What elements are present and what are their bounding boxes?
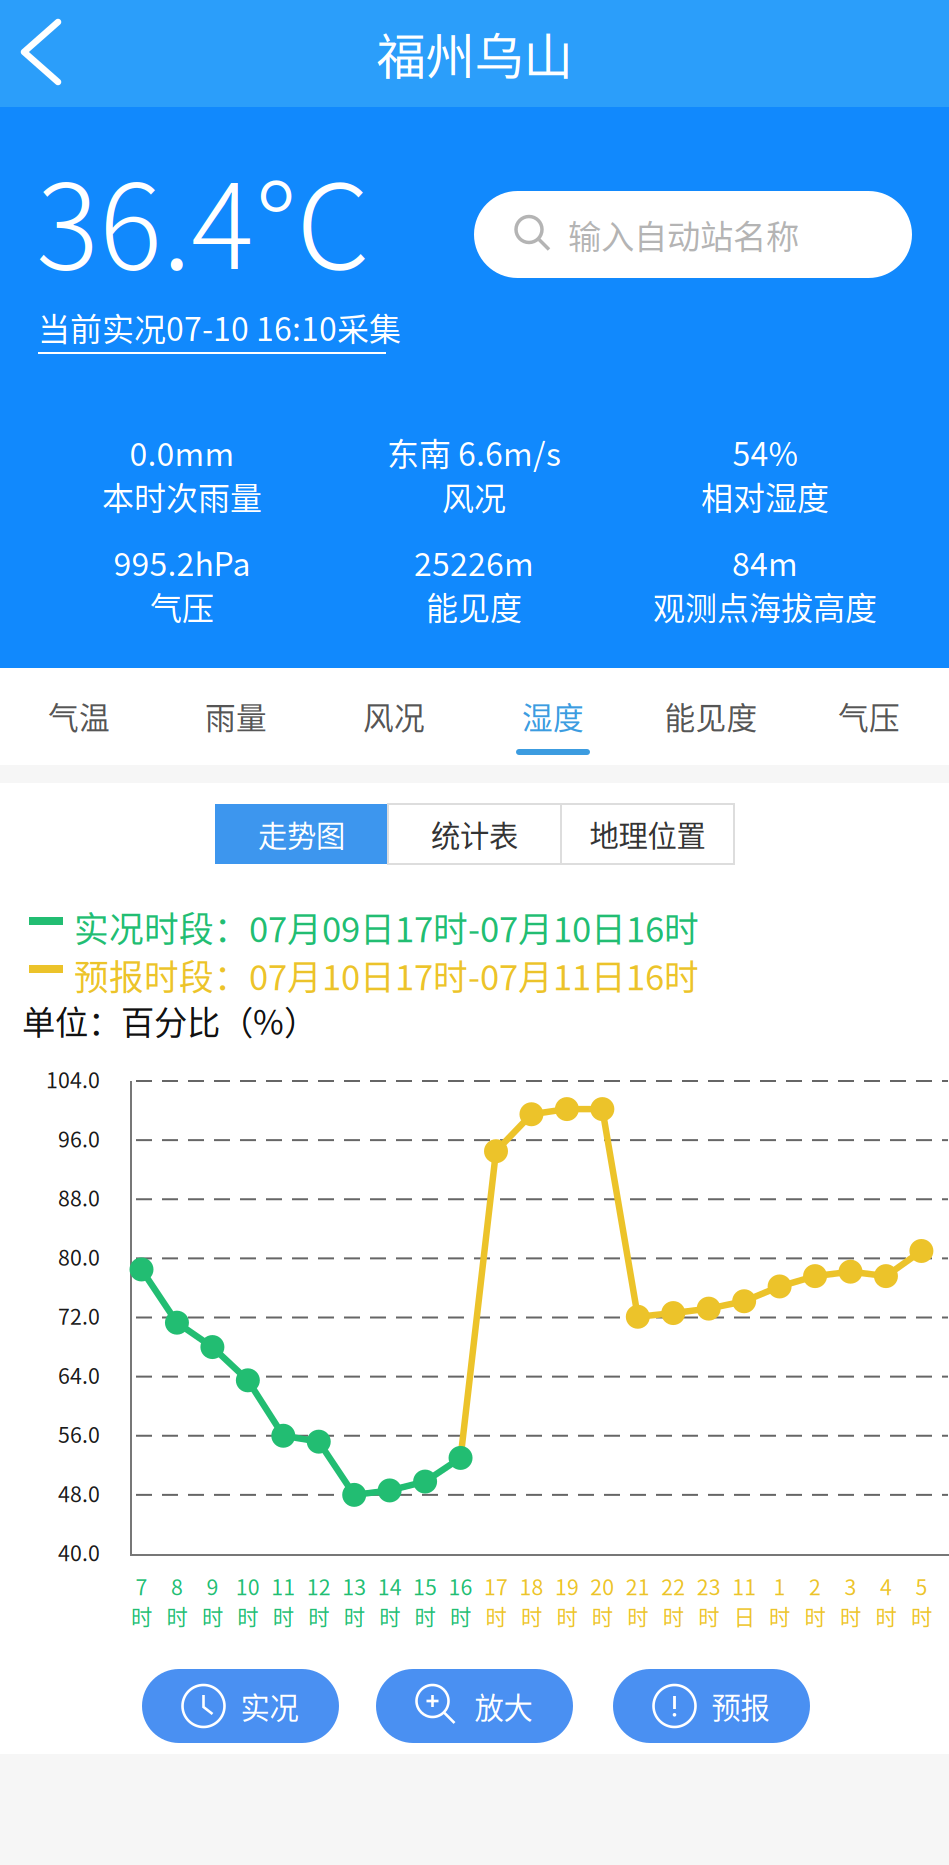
staticText: 56.0 [58,1418,100,1449]
staticText: 时 [840,1601,861,1631]
button[interactable]: 地理位置 [561,804,734,864]
staticText: 84m [732,539,798,585]
staticText: 时 [875,1601,896,1631]
staticText: 48.0 [58,1477,100,1508]
staticText: 雨量 [205,694,267,738]
staticText: 湿度 [522,694,584,738]
staticText: 实况 [240,1685,298,1727]
button[interactable]: 输入自动站名称 [474,191,912,278]
staticText: 走势图 [258,813,345,855]
staticText: 观测点海拔高度 [653,583,877,629]
button[interactable]: 返回 [0,0,110,104]
staticText: 20 [590,1571,614,1601]
staticText: 96.0 [58,1123,100,1154]
staticText: 时 [769,1601,790,1631]
staticText: 25226m [414,539,534,585]
staticText: 17 [484,1571,508,1601]
staticText: 时 [273,1601,294,1631]
staticText: 放大 [474,1685,532,1727]
staticText: 本时次雨量 [102,473,262,519]
staticText: 时 [592,1601,613,1631]
button[interactable]: 统计表 [388,804,561,864]
staticText: 时 [344,1601,365,1631]
staticText: 22 [661,1571,685,1601]
staticText: 19 [555,1571,579,1601]
staticText: 21 [626,1571,650,1601]
staticText: 时 [485,1601,506,1631]
staticText: 15 [413,1571,437,1601]
staticText: 9 [206,1571,218,1601]
staticText: 995.2hPa [113,539,250,585]
staticText: 实况时段：07月09日17时-07月10日16时 [74,902,699,952]
staticText: 80.0 [58,1241,100,1272]
staticText: 相对湿度 [701,473,829,519]
button[interactable]: 雨量 [161,668,311,765]
staticText: 10 [236,1571,260,1601]
button[interactable]: 气温 [4,668,154,765]
staticText: 14 [378,1571,402,1601]
staticText: 时 [805,1601,826,1631]
staticText: 福州乌山 [376,17,572,89]
staticText: 风况 [442,473,506,519]
staticText: 12 [307,1571,331,1601]
staticText: 11 [271,1571,295,1601]
button[interactable]: 湿度 [478,668,628,765]
staticText: 时 [415,1601,436,1631]
staticText: 日 [734,1601,755,1631]
staticText: 气压 [150,583,214,629]
button[interactable]: 能见度 [636,668,786,765]
staticText: 输入自动站名称 [568,210,799,259]
staticText: 8 [171,1571,183,1601]
button[interactable]: 走势图 [215,804,388,864]
staticText: 能见度 [664,694,757,738]
staticText: 时 [379,1601,400,1631]
button[interactable]: 实况 [142,1669,339,1743]
staticText: 预报 [711,1685,769,1727]
staticText: 54% [732,429,797,475]
staticText: 5 [915,1571,927,1601]
staticText: 时 [202,1601,223,1631]
staticText: 风况 [363,694,425,738]
staticText: 预报时段：07月10日17时-07月11日16时 [74,950,699,1000]
staticText: 0.0mm [129,429,234,475]
staticText: 72.0 [58,1300,100,1331]
staticText: 23 [697,1571,721,1601]
staticText: 时 [911,1601,932,1631]
staticText: 地理位置 [589,813,705,855]
staticText: 单位：百分比（%） [22,996,317,1044]
staticText: 时 [663,1601,684,1631]
staticText: 东南 6.6m/s [387,429,561,475]
staticText: 11 [732,1571,756,1601]
staticText: 时 [308,1601,329,1631]
staticText: 88.0 [58,1182,100,1213]
staticText: 2 [809,1571,821,1601]
staticText: 64.0 [58,1359,100,1390]
button[interactable]: 风况 [319,668,469,765]
staticText: 统计表 [431,813,518,855]
staticText: 时 [521,1601,542,1631]
staticText: 7 [135,1571,147,1601]
staticText: 18 [519,1571,543,1601]
staticText: 1 [774,1571,786,1601]
staticText: 36.4℃ [36,133,371,303]
staticText: 40.0 [58,1537,100,1567]
staticText: 气温 [48,694,110,738]
staticText: 时 [556,1601,577,1631]
staticText: 104.0 [46,1064,100,1094]
staticText: 当前实况07-10 16:10采集 [38,304,401,350]
staticText: 3 [844,1571,856,1601]
button[interactable]: 放大 [376,1669,573,1743]
button[interactable]: 预报 [613,1669,810,1743]
staticText: 4 [880,1571,892,1601]
staticText: 时 [627,1601,648,1631]
staticText: 16 [449,1571,473,1601]
staticText: 13 [342,1571,366,1601]
staticText: 时 [166,1601,187,1631]
staticText: 时 [237,1601,258,1631]
staticText: 时 [698,1601,719,1631]
staticText: 时 [131,1601,152,1631]
staticText: 时 [450,1601,471,1631]
staticText: 气压 [838,694,900,738]
staticText: 能见度 [426,583,522,629]
button[interactable]: 气压 [794,668,944,765]
